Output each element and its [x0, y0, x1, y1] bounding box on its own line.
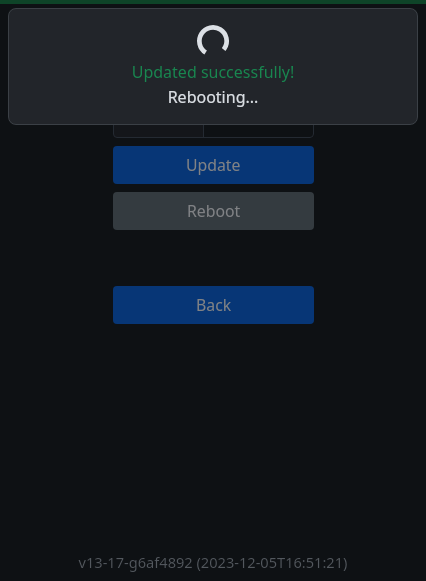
button[interactable]: [204, 98, 314, 138]
staticText: Update: [186, 154, 241, 176]
other: Loading: [197, 25, 229, 57]
staticText: Rebooting...: [8, 86, 418, 108]
staticText: Reboot: [187, 200, 241, 222]
staticText: Back: [196, 294, 232, 316]
staticText: v13-17-g6af4892 (2023-12-05T16:51:21): [0, 552, 426, 572]
button[interactable]: Update: [113, 146, 314, 184]
button[interactable]: Reboot: [113, 192, 314, 230]
button[interactable]: Back: [113, 286, 314, 324]
staticText: Updated successfully!: [8, 61, 418, 83]
button[interactable]: [113, 98, 203, 138]
